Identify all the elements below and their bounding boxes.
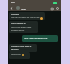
staticText: Alex [21, 7, 26, 10]
button[interactable]: Nice. Yeah amazing! Way [22, 35, 58, 42]
staticText: We can hit M&M on Ave or the [11, 16, 40, 19]
staticText: 9:41 [11, 1, 16, 4]
button[interactable]: Can't believe it! [9, 21, 38, 33]
staticText: Couldn't have done it without [11, 45, 37, 51]
staticText: Thank you [11, 53, 21, 56]
button[interactable]: Call [55, 6, 60, 11]
staticText: Nice. Yeah amazing! Way [24, 37, 48, 40]
button[interactable]: Thank you [9, 52, 30, 59]
button[interactable]: Video call [50, 6, 55, 11]
staticText: Standup [11, 13, 19, 16]
staticText: ocident works [11, 29, 25, 32]
button[interactable]: Couldn't have done it without [9, 44, 37, 52]
button[interactable]: Standup [9, 12, 45, 20]
button[interactable]: Back [9, 6, 13, 10]
staticText: This is the great news [11, 26, 32, 29]
staticText: Can't believe it! [11, 22, 26, 25]
